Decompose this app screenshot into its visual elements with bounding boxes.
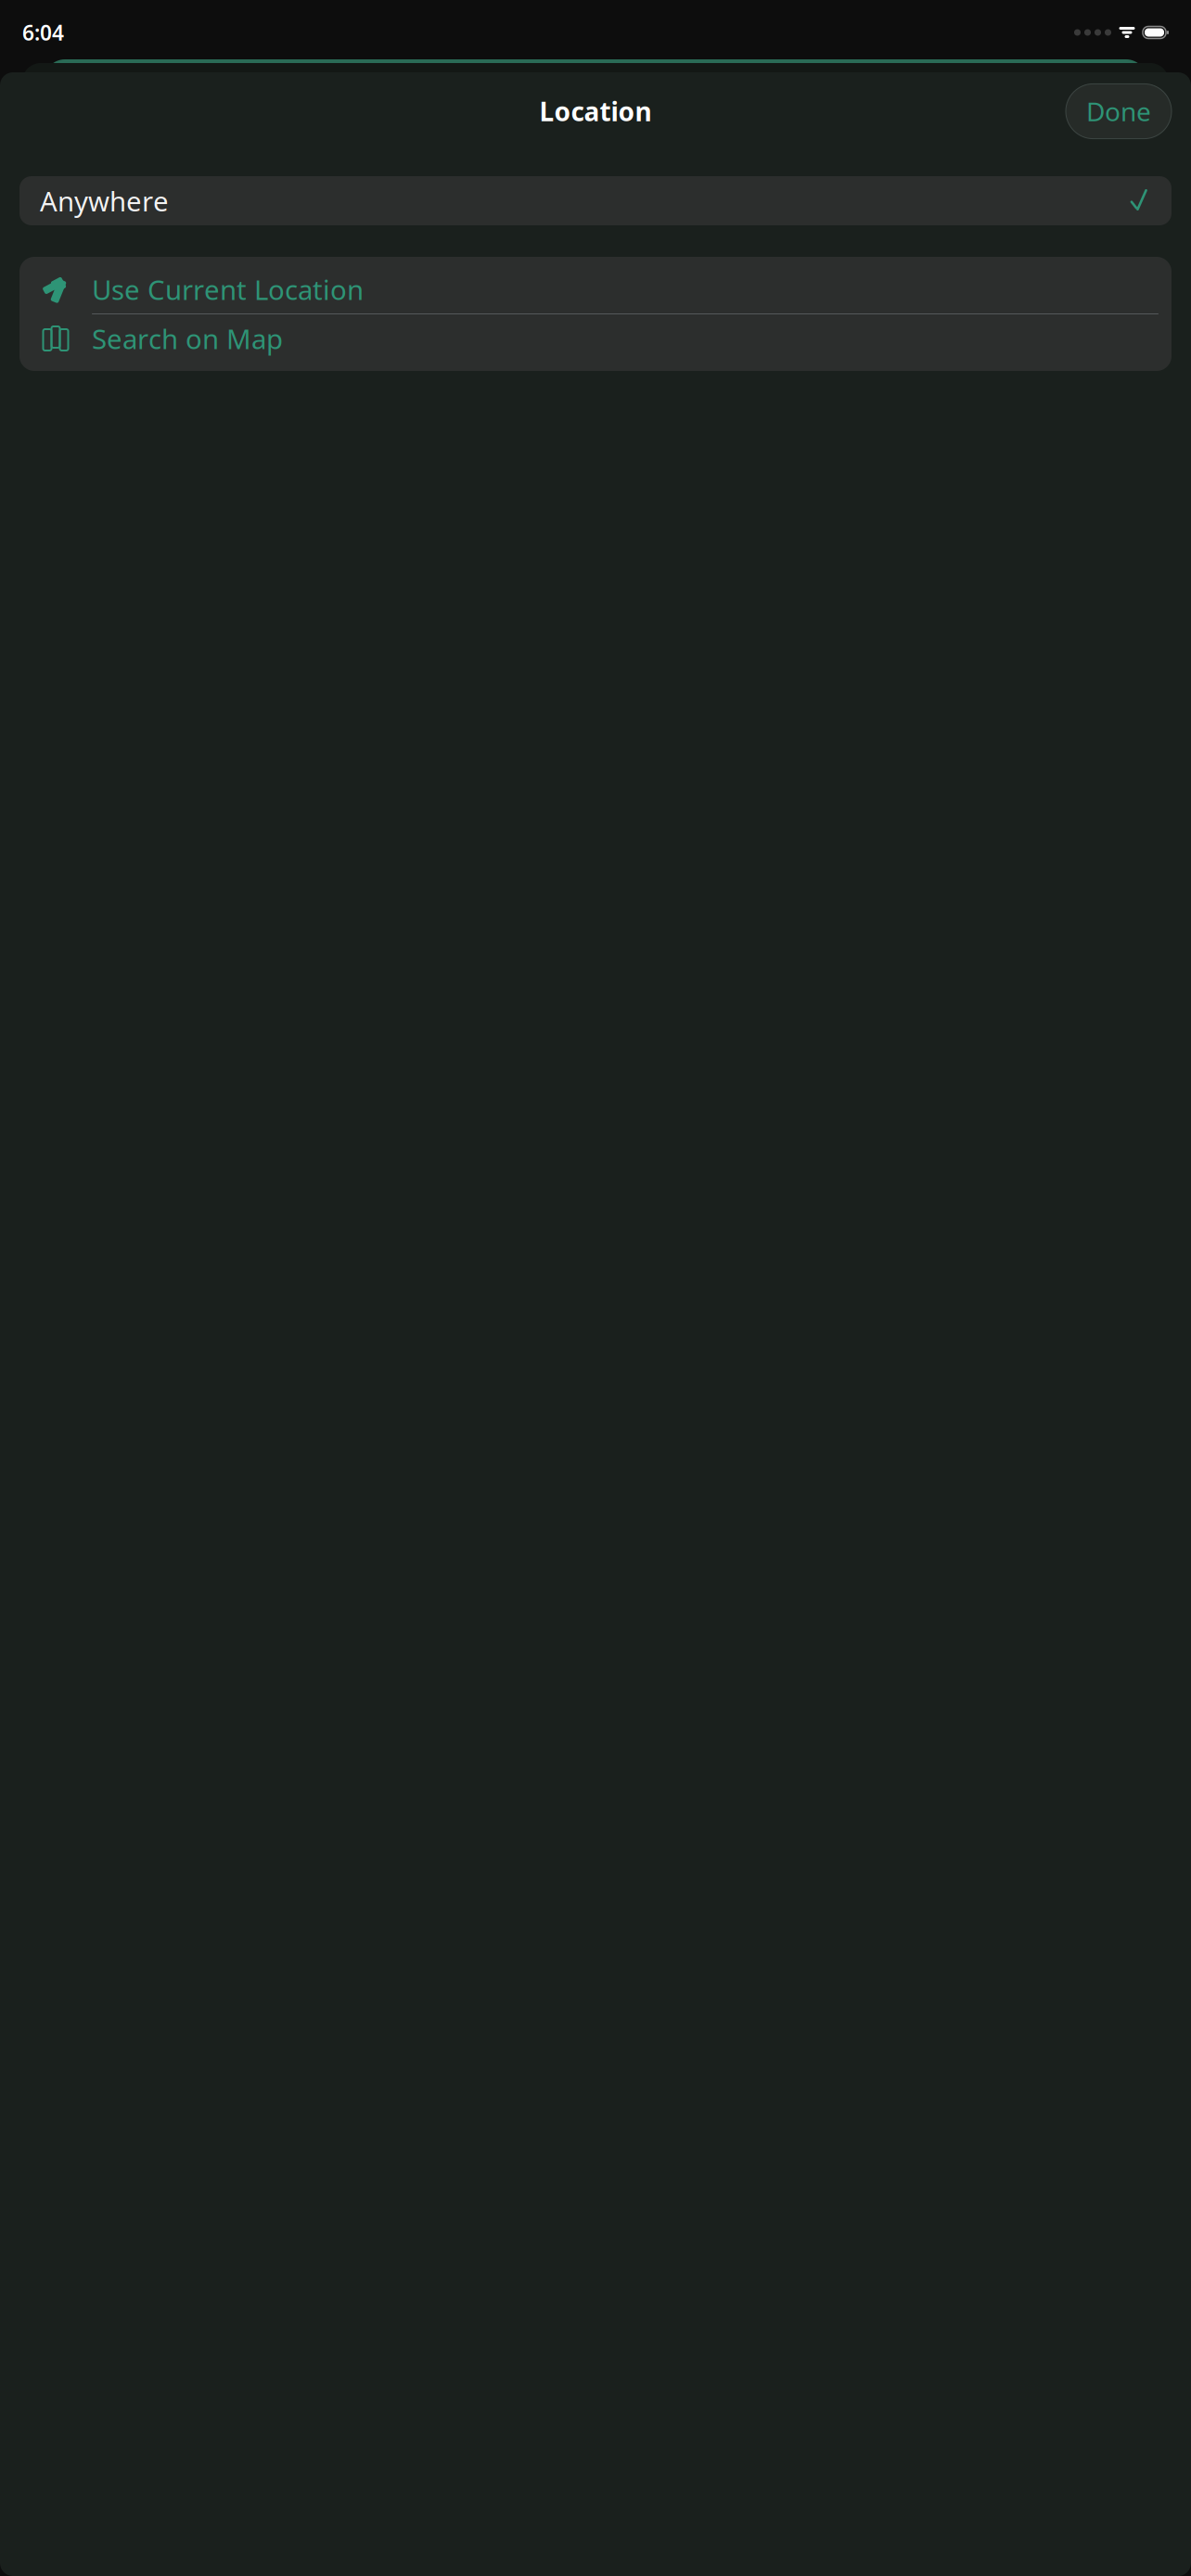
button[interactable]: Done [1066, 84, 1172, 139]
staticText: Search on Map [92, 320, 283, 357]
button[interactable]: Search on Map [19, 314, 1172, 363]
button[interactable]: Anywhere [19, 176, 1172, 225]
staticText: Location [539, 94, 652, 129]
staticText: Anywhere [40, 183, 169, 219]
staticText: Done [1086, 94, 1151, 129]
staticText: 6:04 [22, 18, 64, 46]
staticText: Use Current Location [92, 271, 364, 307]
button[interactable]: Use Current Location [19, 265, 1172, 313]
